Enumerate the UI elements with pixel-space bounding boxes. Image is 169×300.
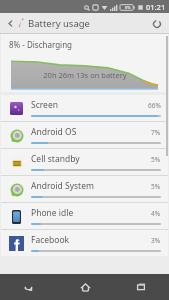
button[interactable]: Refresh [150,13,164,34]
staticText: 8% - Discharging [9,39,73,50]
staticText: Battery usage [28,17,90,30]
staticText: 4% [151,209,161,218]
staticText: 01:21 [146,2,166,12]
button[interactable]: Android System [1,175,168,202]
staticText: Android OS [31,126,151,138]
staticText: Screen [31,99,148,111]
button[interactable]: Phone idle [1,202,168,229]
staticText: Android System [31,180,151,192]
button[interactable]: Back [4,13,16,34]
button[interactable]: Home [57,274,113,300]
staticText: Cell standby [31,153,151,165]
staticText: 3% [151,236,161,245]
staticText: 5% [151,182,161,191]
button[interactable]: 8% - Discharging [1,34,168,92]
staticText: 7% [151,128,161,137]
button[interactable]: Screen [1,95,168,121]
button[interactable]: Android OS [1,121,168,148]
staticText: 20h 26m 13s on battery [43,70,127,80]
staticText: Phone idle [31,207,151,219]
button[interactable]: Cell standby [1,148,168,175]
button[interactable]: Back [0,274,57,300]
staticText: Facebook [31,234,151,246]
button[interactable]: Facebook [1,229,168,256]
staticText: 5% [151,155,161,164]
button[interactable]: Recent apps [113,274,169,300]
staticText: 8% [125,5,131,10]
staticText: 66% [148,101,161,110]
